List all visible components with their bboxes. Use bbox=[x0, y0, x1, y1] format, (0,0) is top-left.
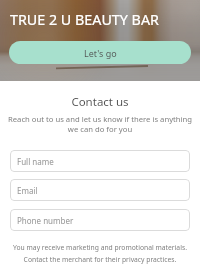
button[interactable]: Email bbox=[10, 179, 190, 201]
staticText: You may receive marketing and promotiona… bbox=[0, 243, 200, 264]
staticText: TRUE 2 U BEAUTY BAR bbox=[10, 10, 159, 29]
button[interactable]: Let's go bbox=[9, 41, 191, 64]
staticText: Contact us bbox=[0, 94, 200, 110]
staticText: Email bbox=[17, 185, 38, 196]
button[interactable]: Phone number bbox=[10, 209, 190, 231]
staticText: Let's go bbox=[84, 47, 117, 59]
button[interactable]: Full name bbox=[10, 150, 190, 172]
staticText: Full name bbox=[17, 156, 54, 167]
staticText: Phone number bbox=[17, 215, 74, 226]
staticText: Reach out to us and let us know if there… bbox=[0, 114, 200, 134]
